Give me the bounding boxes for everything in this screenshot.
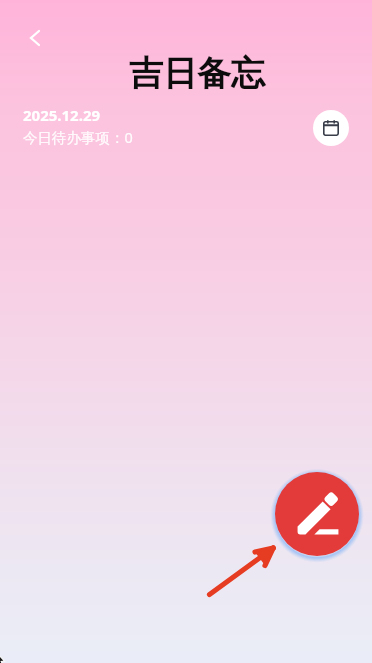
button[interactable]: Back xyxy=(18,21,52,55)
staticText: 2025.12.29 xyxy=(23,105,101,125)
staticText: 吉日备忘 xyxy=(11,52,372,95)
button[interactable]: Add note xyxy=(275,472,359,556)
staticText: 今日待办事项：0 xyxy=(23,127,133,147)
button[interactable]: Calendar xyxy=(313,110,349,146)
